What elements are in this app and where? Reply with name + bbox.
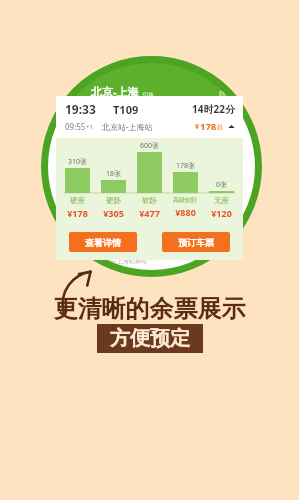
button[interactable]: 预订车票	[162, 232, 230, 252]
staticText: 硬座	[70, 196, 85, 205]
staticText: 北京-上海	[91, 84, 139, 99]
staticText: 5时35分	[213, 244, 240, 254]
staticText: ¥305	[103, 207, 124, 219]
staticText: 14时22分	[192, 102, 235, 116]
staticText: 预订车票	[178, 237, 214, 248]
staticText: 310张	[68, 157, 88, 167]
staticText: 600张	[140, 141, 160, 151]
staticText: 查看详情	[85, 237, 121, 248]
staticText: 北京南站-上海虹桥站	[91, 257, 147, 265]
staticText: 高级软卧	[173, 196, 197, 204]
staticText: ¥120	[211, 207, 232, 219]
staticText: 起	[217, 123, 223, 131]
other: 指向上方的箭头	[61, 269, 97, 315]
staticText: T109	[113, 102, 139, 117]
staticText: 08	[63, 244, 72, 254]
other: 收起	[228, 123, 235, 130]
staticText: 更清晰的余票展示	[0, 294, 299, 324]
staticText: G109	[84, 244, 104, 255]
staticText: 切换	[142, 91, 154, 99]
staticText: 09:55	[65, 121, 86, 132]
staticText: 178张	[176, 161, 196, 171]
staticText: ¥880	[175, 206, 196, 218]
staticText: 18张	[106, 169, 122, 179]
staticText: 北京站-上海站	[102, 121, 153, 132]
staticText: 178	[200, 120, 217, 133]
staticText: +1	[86, 123, 93, 131]
staticText: ¥	[195, 122, 200, 132]
staticText: 软卧	[142, 196, 157, 205]
staticText: 硬卧	[106, 196, 121, 205]
staticText: 方便预定	[110, 326, 190, 351]
staticText: ¥477	[139, 207, 160, 219]
staticText: 无座	[214, 196, 229, 205]
staticText: 筛选	[219, 90, 232, 98]
button[interactable]: 19:33	[56, 96, 243, 260]
staticText: 19:33	[65, 101, 96, 117]
button[interactable]: 查看详情	[69, 232, 137, 252]
staticText: ¥178	[67, 207, 88, 219]
staticText: 0张	[216, 180, 228, 190]
